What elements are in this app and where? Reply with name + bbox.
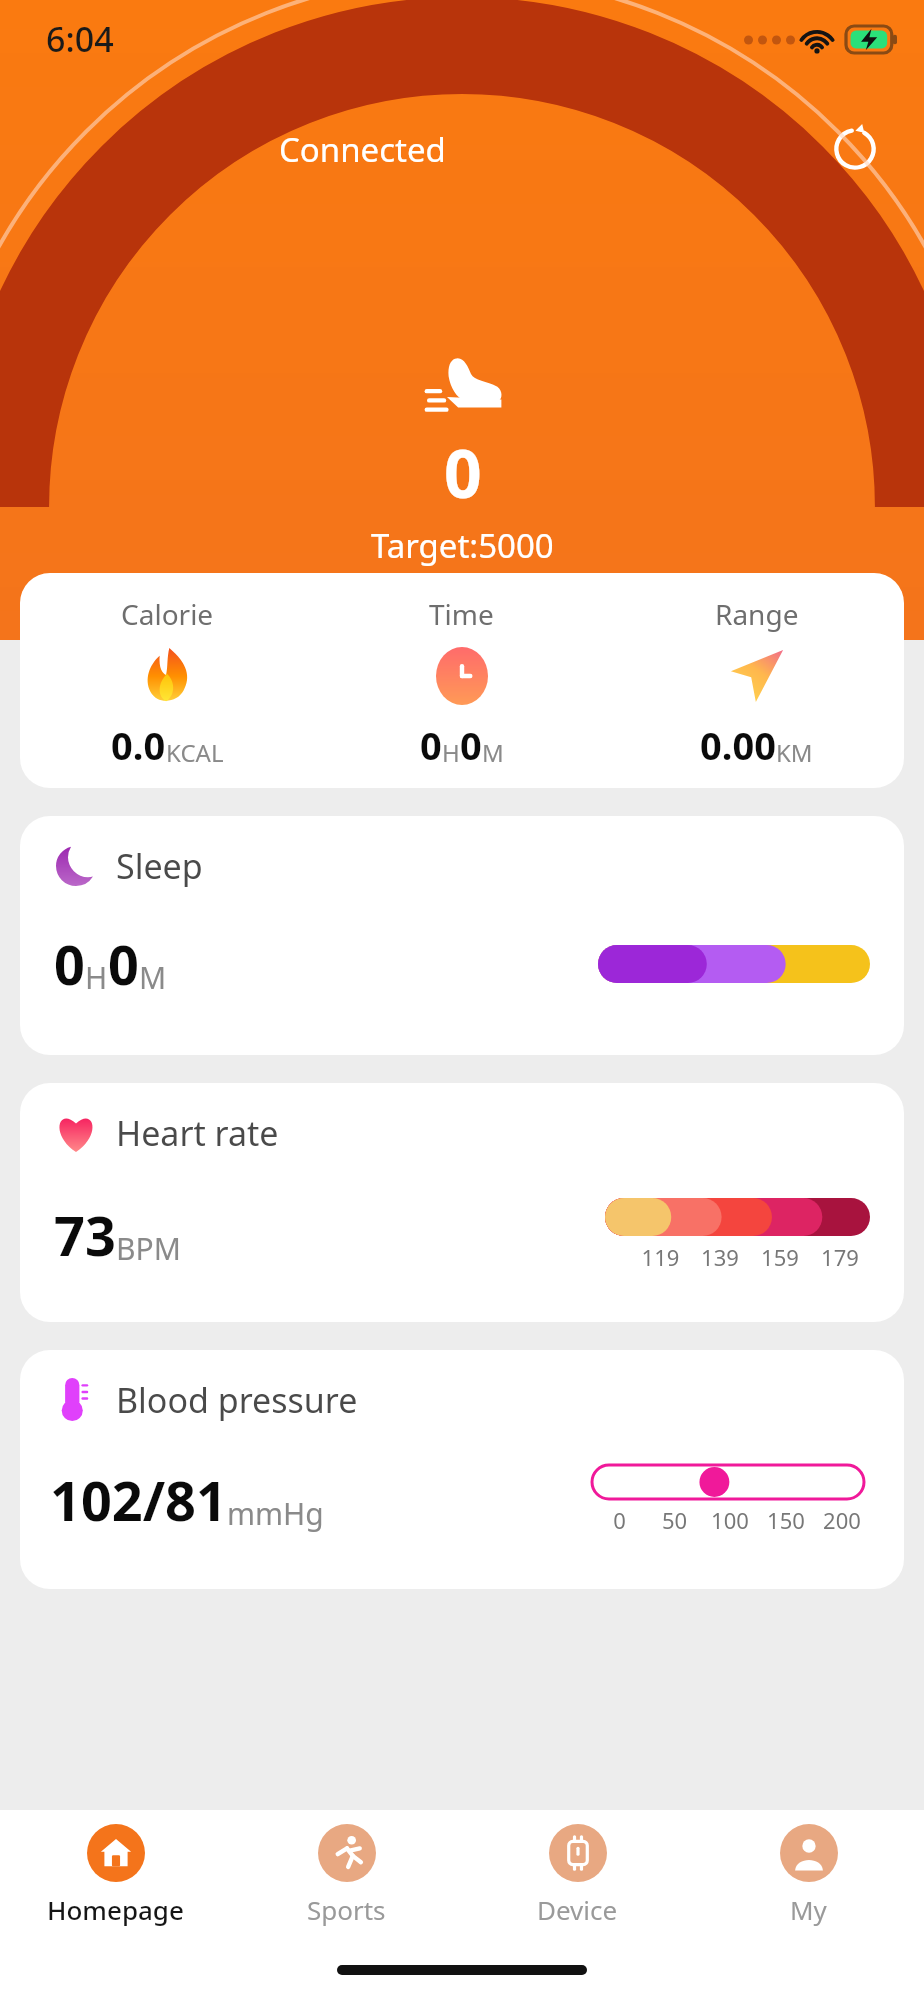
staticText: Sports <box>307 1892 386 1927</box>
staticText: H <box>442 736 460 769</box>
staticText: mmHg <box>227 1493 324 1534</box>
staticText: 0 <box>592 1505 647 1535</box>
staticText: Sleep <box>116 843 203 889</box>
staticText: 102/81 <box>50 1463 227 1537</box>
staticText: 150 <box>758 1505 814 1535</box>
staticText: 0 <box>444 427 482 517</box>
staticText: M <box>139 957 167 998</box>
button[interactable]: Device <box>462 1810 693 1940</box>
staticText: Range <box>715 595 799 633</box>
button[interactable]: Sync <box>742 114 812 184</box>
staticText: Homepage <box>47 1892 184 1927</box>
staticText: 0 <box>108 927 139 1001</box>
button[interactable]: Sleep <box>20 816 904 1055</box>
staticText: KCAL <box>166 736 224 769</box>
staticText: 73 <box>54 1198 116 1272</box>
button[interactable]: Calorie <box>20 573 904 788</box>
staticText: 6:04 <box>46 16 114 62</box>
staticText: Device <box>537 1892 618 1927</box>
staticText: 0.00 <box>700 719 776 771</box>
staticText: 0 <box>54 927 85 1001</box>
staticText: Time <box>429 595 494 633</box>
button[interactable]: Range <box>609 595 904 771</box>
staticText: 159 <box>750 1242 810 1272</box>
staticText: Calorie <box>121 595 214 633</box>
button[interactable]: Calorie <box>20 595 314 771</box>
staticText: 0 <box>420 719 442 771</box>
staticText: M <box>482 736 504 769</box>
staticText: 200 <box>814 1505 870 1535</box>
button[interactable]: Homepage <box>0 1810 231 1940</box>
staticText: 100 <box>702 1505 758 1535</box>
button[interactable]: Heart rate <box>20 1083 904 1322</box>
staticText: Heart rate <box>116 1110 279 1156</box>
staticText: 119 <box>631 1242 690 1272</box>
staticText: Target:5000 <box>371 523 554 568</box>
staticText: Connected <box>279 127 446 172</box>
staticText: H <box>85 957 108 998</box>
button[interactable]: Time <box>314 595 609 771</box>
staticText: 139 <box>690 1242 750 1272</box>
staticText: My <box>790 1892 827 1927</box>
button[interactable]: Blood pressure <box>20 1350 904 1589</box>
staticText: 50 <box>647 1505 702 1535</box>
staticText: BPM <box>116 1228 181 1269</box>
staticText: KM <box>776 736 813 769</box>
staticText: 179 <box>810 1242 870 1272</box>
staticText: 0.0 <box>111 719 166 771</box>
staticText: Blood pressure <box>116 1377 358 1423</box>
staticText: 0 <box>460 719 482 771</box>
button[interactable]: Sports <box>231 1810 462 1940</box>
button[interactable]: Refresh <box>820 114 890 184</box>
button[interactable]: My <box>693 1810 924 1940</box>
